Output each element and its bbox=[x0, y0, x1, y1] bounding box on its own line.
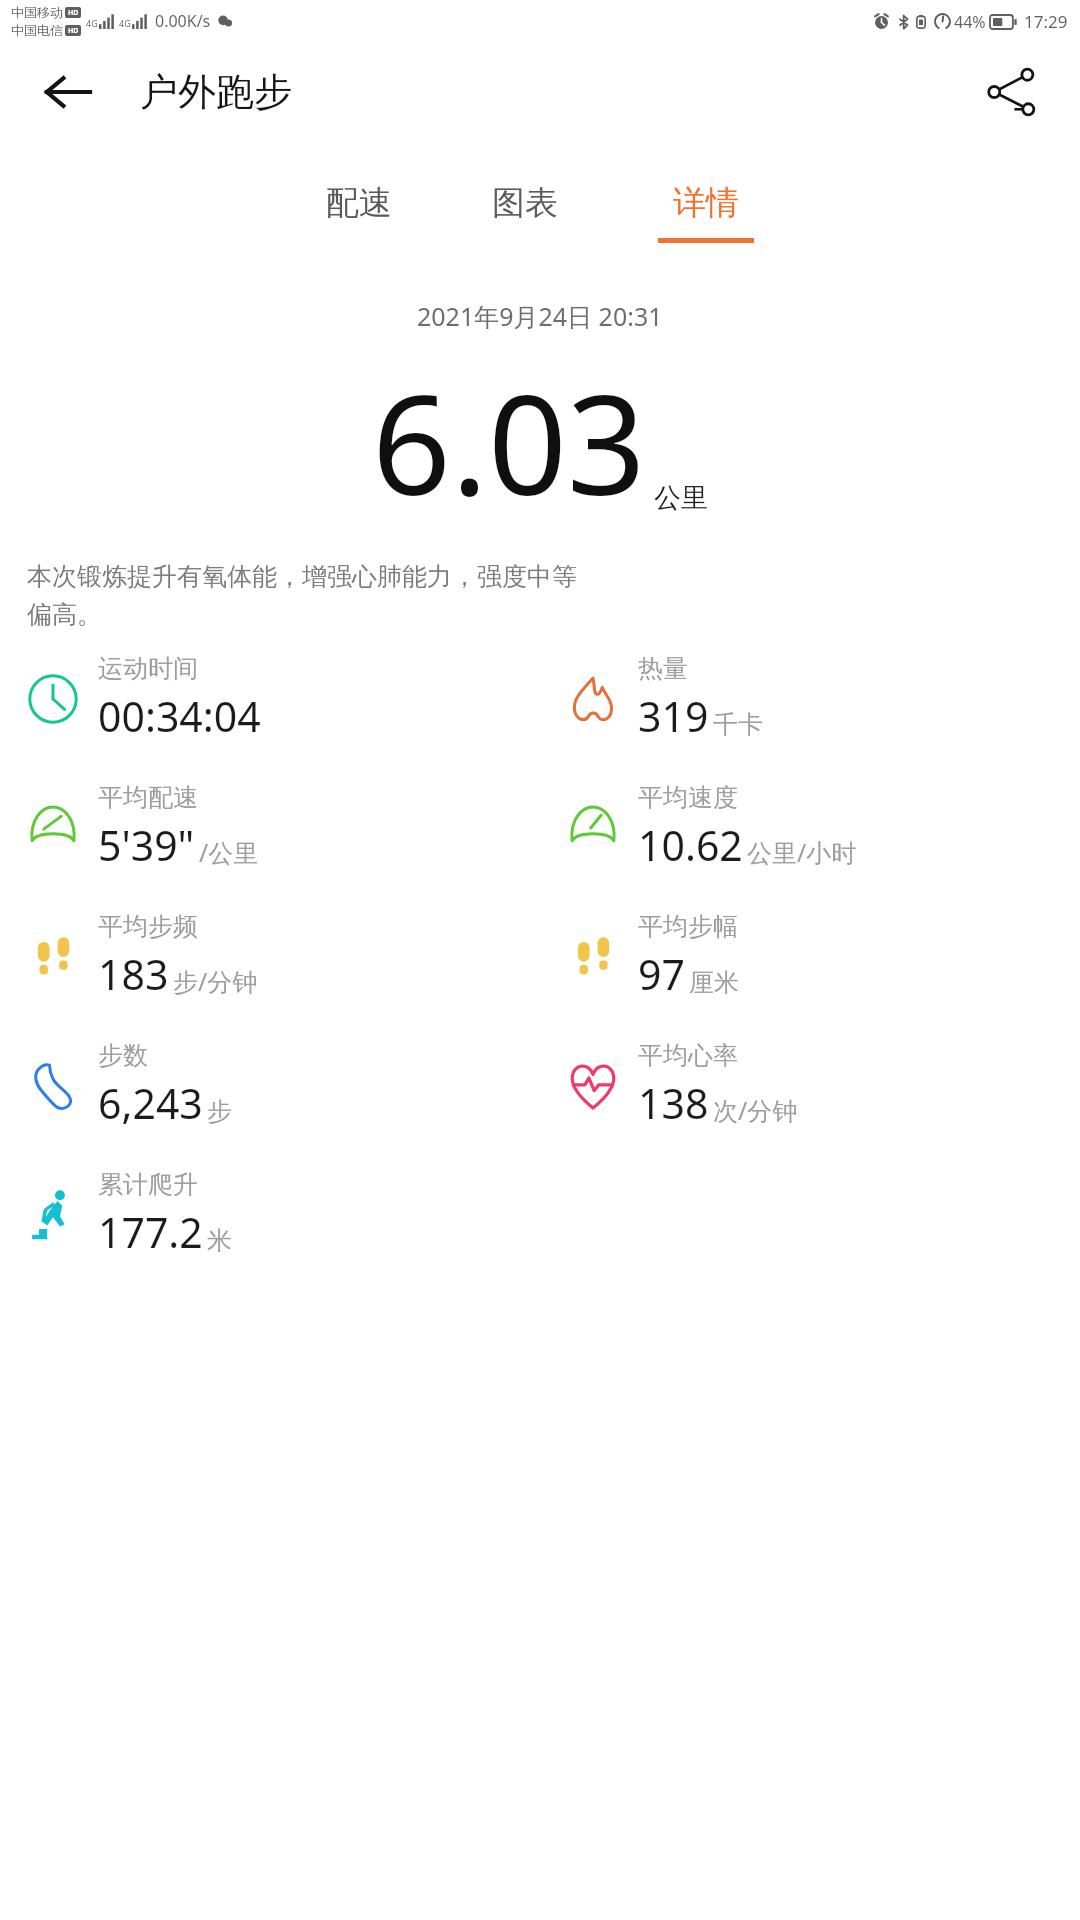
staticText: 平均配速 bbox=[98, 782, 198, 813]
staticText: 10.62 bbox=[638, 817, 743, 873]
staticText: 厘米 bbox=[689, 967, 739, 998]
staticText: 平均速度 bbox=[638, 782, 738, 813]
button[interactable]: 图表 bbox=[486, 178, 564, 247]
staticText: 177.2 bbox=[98, 1204, 203, 1260]
staticText: 运动时间 bbox=[98, 653, 198, 684]
staticText: 平均心率 bbox=[638, 1040, 738, 1071]
staticText: 步数 bbox=[98, 1040, 148, 1071]
staticText: /公里 bbox=[199, 835, 259, 869]
button[interactable]: 详情 bbox=[652, 178, 760, 247]
staticText: 累计爬升 bbox=[98, 1169, 198, 1200]
button[interactable]: 运动时间 bbox=[0, 653, 540, 744]
staticText: 中国移动 bbox=[11, 4, 63, 20]
staticText: 97 bbox=[638, 946, 685, 1002]
staticText: 138 bbox=[638, 1075, 709, 1131]
button[interactable]: Back bbox=[40, 64, 96, 120]
staticText: 配速 bbox=[326, 182, 392, 224]
button[interactable]: 步数 bbox=[0, 1040, 540, 1131]
staticText: 4G bbox=[86, 17, 98, 29]
button[interactable]: 平均步频 bbox=[0, 911, 540, 1002]
staticText: 44% bbox=[954, 11, 986, 33]
staticText: 2021年9月24日 20:31 bbox=[417, 299, 663, 333]
button[interactable]: 累计爬升 bbox=[0, 1169, 540, 1260]
staticText: 平均步频 bbox=[98, 911, 198, 942]
staticText: 本次锻炼提升有氧体能，增强心肺能力，强度中等 偏高。 bbox=[27, 561, 1060, 631]
staticText: 183 bbox=[98, 946, 169, 1002]
button[interactable]: 平均配速 bbox=[0, 782, 540, 873]
staticText: 17:29 bbox=[1024, 10, 1068, 33]
button[interactable]: 平均心率 bbox=[540, 1040, 1080, 1131]
button[interactable]: 配速 bbox=[320, 178, 398, 247]
staticText: 热量 bbox=[638, 653, 688, 684]
staticText: 平均步幅 bbox=[638, 911, 738, 942]
button[interactable]: 平均步幅 bbox=[540, 911, 1080, 1002]
staticText: 6,243 bbox=[98, 1075, 203, 1131]
staticText: 图表 bbox=[492, 182, 558, 224]
staticText: HD bbox=[68, 8, 79, 18]
staticText: 米 bbox=[207, 1225, 232, 1256]
staticText: 4G bbox=[119, 17, 131, 29]
staticText: 00:34:04 bbox=[98, 688, 261, 744]
staticText: 次/分钟 bbox=[713, 1093, 798, 1127]
staticText: 公里/小时 bbox=[747, 835, 857, 869]
button[interactable]: 平均速度 bbox=[540, 782, 1080, 873]
staticText: 详情 bbox=[673, 182, 739, 224]
staticText: 千卡 bbox=[713, 709, 763, 740]
staticText: 6.03 bbox=[372, 347, 646, 535]
staticText: 步/分钟 bbox=[173, 964, 258, 998]
staticText: 0.00K/s bbox=[155, 10, 211, 32]
staticText: 户外跑步 bbox=[140, 68, 292, 116]
staticText: 中国电信 bbox=[11, 22, 63, 38]
staticText: 步 bbox=[207, 1096, 232, 1127]
staticText: 公里 bbox=[654, 481, 708, 515]
button[interactable]: 热量 bbox=[540, 653, 1080, 744]
staticText: HD bbox=[68, 26, 79, 36]
staticText: 5'39" bbox=[98, 817, 195, 873]
staticText: 319 bbox=[638, 688, 709, 744]
button[interactable]: Share bbox=[980, 60, 1044, 124]
